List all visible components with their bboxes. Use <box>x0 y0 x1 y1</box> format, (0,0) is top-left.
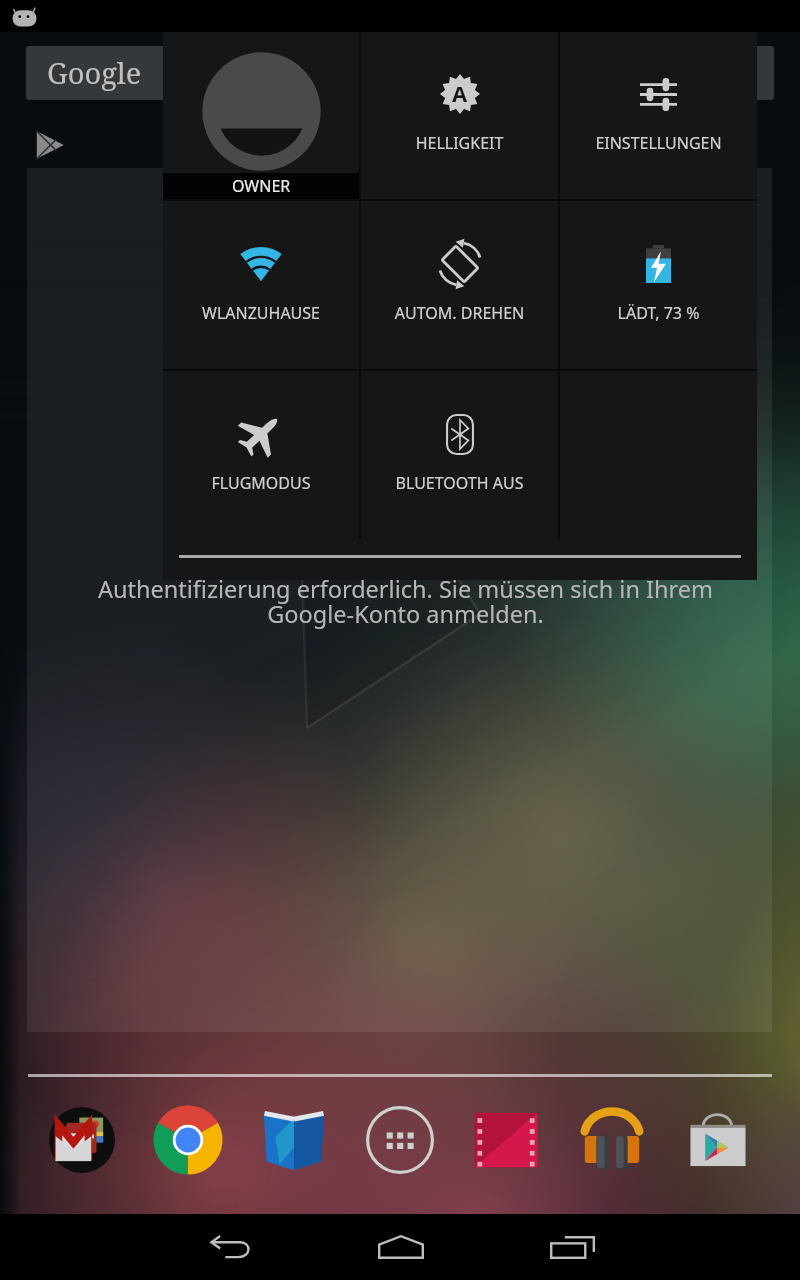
staticText: EINSTELLUNGEN <box>560 132 757 154</box>
button[interactable]: Play Store <box>665 1096 771 1184</box>
button[interactable]: BLUETOOTH AUS <box>361 371 558 538</box>
other: Play Store <box>35 130 65 160</box>
staticText: AUTOM. DREHEN <box>361 302 558 324</box>
staticText: Google <box>47 53 142 92</box>
button[interactable]: Google <box>26 46 774 100</box>
button[interactable]: Chrome <box>135 1096 241 1184</box>
staticText: Authentifizierung erforderlich. Sie müss… <box>33 573 778 630</box>
button[interactable]: Play Books <box>241 1096 347 1184</box>
staticText: WLANZUHAUSE <box>163 302 359 324</box>
button[interactable]: Play Movies <box>453 1096 559 1184</box>
button[interactable]: All apps <box>347 1096 453 1184</box>
button[interactable]: A <box>361 32 558 199</box>
button[interactable]: WLANZUHAUSE <box>163 201 359 369</box>
staticText: HELLIGKEIT <box>361 132 558 154</box>
button[interactable]: EINSTELLUNGEN <box>560 32 757 199</box>
staticText: FLUGMODUS <box>163 472 359 494</box>
button[interactable]: Home <box>343 1214 459 1280</box>
button[interactable]: Play Music <box>559 1096 665 1184</box>
staticText: OWNER <box>232 175 291 197</box>
button[interactable]: FLUGMODUS <box>163 371 359 538</box>
staticText: LÄDT, 73 % <box>560 302 757 324</box>
button[interactable]: Recent apps <box>514 1214 630 1280</box>
button[interactable]: AUTOM. DREHEN <box>361 201 558 369</box>
staticText: A <box>452 78 468 108</box>
button[interactable]: Apps folder <box>29 1096 135 1184</box>
button[interactable]: Authentifizierung erforderlich. Sie müss… <box>27 168 772 1032</box>
button[interactable]: OWNER <box>163 32 359 199</box>
staticText: BLUETOOTH AUS <box>361 472 558 494</box>
button[interactable]: Back <box>172 1214 288 1280</box>
button[interactable]: LÄDT, 73 % <box>560 201 757 369</box>
